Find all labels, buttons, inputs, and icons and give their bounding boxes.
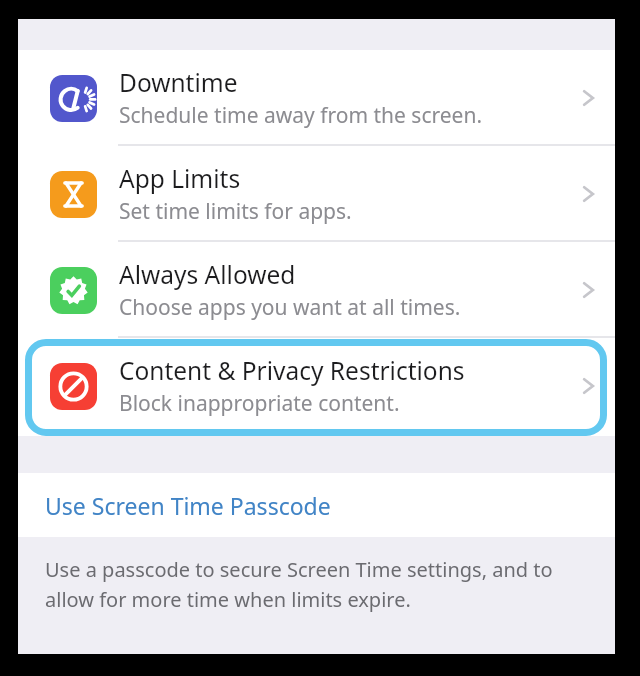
staticText: Schedule time away from the screen. (119, 101, 483, 130)
staticText: Use a passcode to secure Screen Time set… (45, 556, 579, 613)
staticText: Choose apps you want at all times. (119, 293, 461, 322)
staticText: App Limits (119, 162, 241, 195)
other: Downtime (561, 86, 615, 110)
button[interactable]: Content & Privacy Restrictions (18, 338, 615, 434)
button[interactable]: Use Screen Time Passcode (18, 473, 615, 537)
staticText: Set time limits for apps. (119, 197, 352, 226)
staticText: Block inappropriate content. (119, 389, 400, 418)
staticText: Content & Privacy Restrictions (119, 354, 465, 387)
button[interactable]: Downtime (18, 50, 615, 146)
button[interactable]: App Limits (18, 146, 615, 242)
staticText: Always Allowed (119, 258, 296, 291)
staticText: Use Screen Time Passcode (45, 490, 331, 521)
button[interactable]: Always Allowed (18, 242, 615, 338)
other: App Limits (561, 182, 615, 206)
other: Content & Privacy Restrictions (561, 374, 615, 398)
other: Always Allowed (561, 278, 615, 302)
staticText: Downtime (119, 66, 238, 99)
